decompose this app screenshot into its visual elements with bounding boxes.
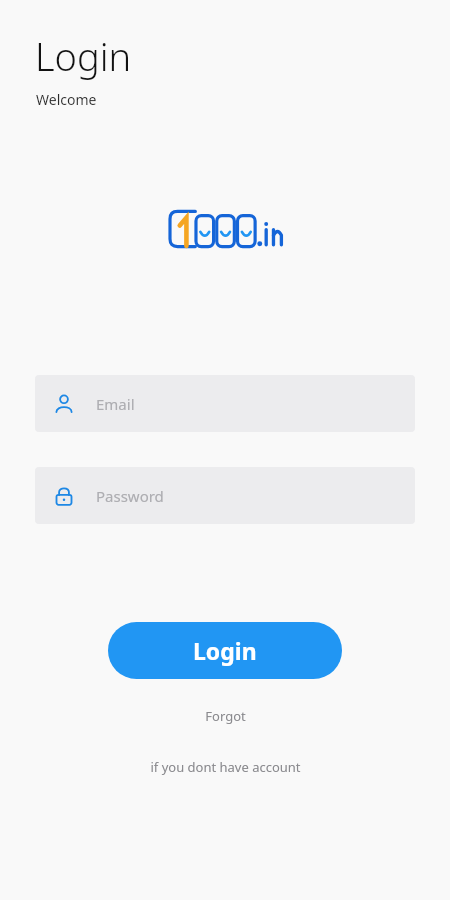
- button[interactable]: Login: [108, 622, 342, 679]
- button[interactable]: Email: [35, 375, 415, 432]
- staticText: if you dont have account: [150, 758, 301, 776]
- staticText: Login: [193, 635, 257, 666]
- staticText: Welcome: [36, 90, 97, 109]
- button[interactable]: Forgot: [189, 703, 262, 729]
- staticText: Password: [96, 486, 164, 506]
- staticText: Email: [96, 394, 135, 414]
- staticText: Login: [35, 30, 132, 82]
- button[interactable]: Password: [35, 467, 415, 524]
- other: 1000.in logo: [170, 207, 280, 251]
- staticText: Forgot: [205, 707, 246, 725]
- button[interactable]: if you dont have account: [134, 754, 317, 780]
